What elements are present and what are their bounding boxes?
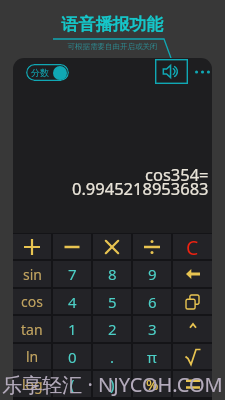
staticText: ): [110, 374, 115, 394]
button[interactable]: Voice readout: [155, 59, 188, 84]
button[interactable]: [173, 371, 212, 397]
button[interactable]: 9: [133, 261, 171, 287]
button[interactable]: More options: [192, 59, 212, 84]
staticText: %: [146, 374, 159, 394]
staticText: 8: [108, 264, 117, 284]
button[interactable]: .: [93, 344, 131, 369]
button[interactable]: [173, 344, 212, 369]
button[interactable]: tan: [13, 316, 51, 342]
staticText: 可根据需要自由开启或关闭: [0, 42, 225, 51]
button[interactable]: cos: [13, 289, 51, 314]
button[interactable]: %: [133, 371, 171, 397]
button[interactable]: 4: [53, 289, 91, 314]
staticText: 0: [68, 347, 77, 367]
button[interactable]: [173, 261, 212, 287]
button[interactable]: 分数: [26, 64, 69, 81]
staticText: 乐享轻汇 · NJYCOH.COM: [0, 371, 225, 398]
staticText: 4: [68, 292, 77, 312]
staticText: π: [147, 347, 157, 367]
button[interactable]: [133, 234, 171, 259]
button[interactable]: ln: [13, 344, 51, 369]
button[interactable]: (: [53, 371, 91, 397]
staticText: 3: [148, 319, 157, 339]
staticText: 5: [108, 292, 117, 312]
staticText: ln: [26, 347, 39, 366]
button[interactable]: π: [133, 344, 171, 369]
staticText: 2: [108, 319, 117, 339]
staticText: log: [22, 375, 43, 394]
staticText: (: [70, 374, 75, 394]
button[interactable]: sin: [13, 261, 51, 287]
button[interactable]: ): [93, 371, 131, 397]
button[interactable]: [173, 316, 212, 342]
button[interactable]: 6: [133, 289, 171, 314]
button[interactable]: 7: [53, 261, 91, 287]
staticText: 6: [148, 292, 157, 312]
button[interactable]: [53, 234, 91, 259]
button[interactable]: 2: [93, 316, 131, 342]
button[interactable]: C: [173, 234, 212, 259]
staticText: .: [110, 347, 115, 367]
button[interactable]: 5: [93, 289, 131, 314]
staticText: sin: [23, 265, 42, 284]
staticText: 9: [148, 264, 157, 284]
staticText: tan: [21, 320, 43, 339]
button[interactable]: 1: [53, 316, 91, 342]
button[interactable]: log: [13, 371, 51, 397]
button[interactable]: [173, 289, 212, 314]
button[interactable]: 3: [133, 316, 171, 342]
staticText: 分数: [31, 67, 49, 78]
button[interactable]: 0: [53, 344, 91, 369]
button[interactable]: [93, 234, 131, 259]
staticText: C: [186, 234, 199, 259]
staticText: 7: [68, 264, 77, 284]
button[interactable]: 8: [93, 261, 131, 287]
button[interactable]: [13, 234, 51, 259]
staticText: 语音播报功能: [0, 14, 225, 35]
staticText: cos: [21, 292, 43, 311]
staticText: 0.9945218953683: [72, 177, 209, 199]
staticText: cos354=: [145, 163, 209, 185]
staticText: 1: [68, 319, 77, 339]
